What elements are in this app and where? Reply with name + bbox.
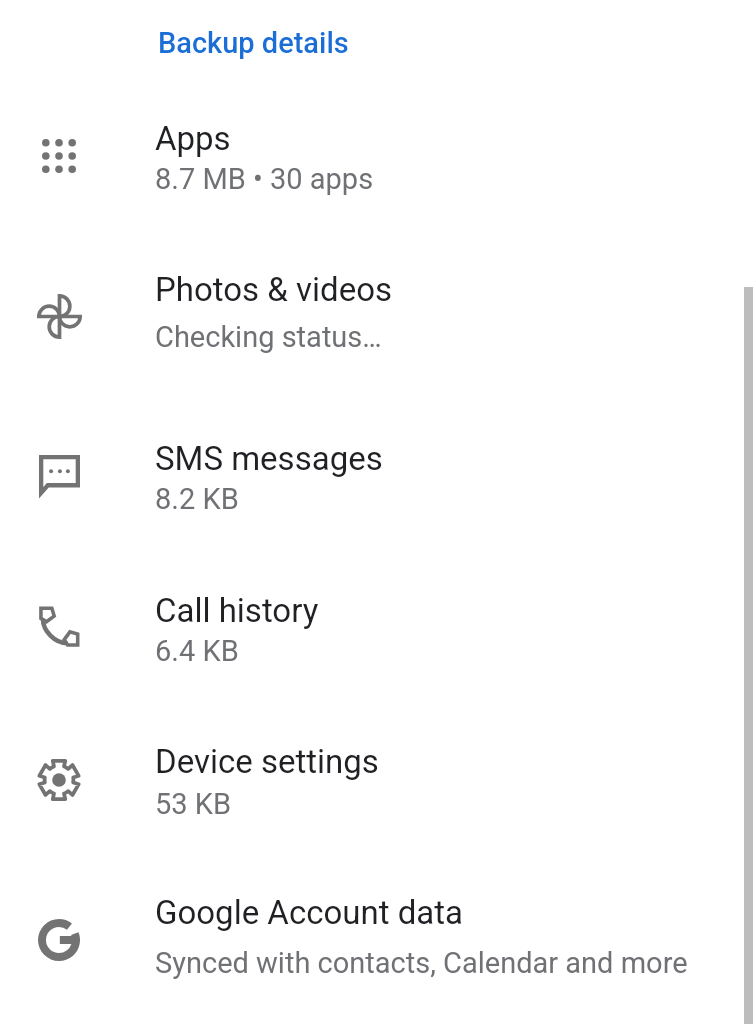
staticText: Checking status… bbox=[155, 320, 382, 354]
other: Photos and videos bbox=[37, 294, 82, 339]
other: Apps bbox=[42, 139, 76, 173]
button[interactable]: Device settings bbox=[0, 704, 753, 856]
other: Device settings bbox=[37, 758, 81, 802]
button[interactable]: Apps bbox=[0, 80, 753, 232]
other: Call history bbox=[38, 606, 80, 648]
staticText: 53 KB bbox=[155, 787, 232, 821]
staticText: Google Account data bbox=[155, 893, 463, 932]
other: SMS messages bbox=[39, 455, 80, 495]
staticText: SMS messages bbox=[155, 439, 383, 478]
button[interactable]: Photos and videos bbox=[0, 240, 753, 392]
staticText: 6.4 KB bbox=[155, 634, 239, 668]
staticText: Synced with contacts, Calendar and more bbox=[155, 946, 688, 980]
staticText: Photos & videos bbox=[155, 270, 393, 309]
button[interactable]: Google Account data bbox=[0, 864, 753, 1016]
staticText: Apps bbox=[155, 119, 231, 158]
staticText: 8.2 KB bbox=[155, 482, 239, 516]
staticText: Backup details bbox=[158, 26, 349, 60]
staticText: 8.7 MB • 30 apps bbox=[155, 162, 374, 196]
other: Google Account data bbox=[38, 919, 80, 961]
button[interactable]: SMS messages bbox=[0, 399, 753, 551]
staticText: Call history bbox=[155, 591, 319, 630]
staticText: Device settings bbox=[155, 742, 379, 781]
button[interactable]: Call history bbox=[0, 551, 753, 703]
